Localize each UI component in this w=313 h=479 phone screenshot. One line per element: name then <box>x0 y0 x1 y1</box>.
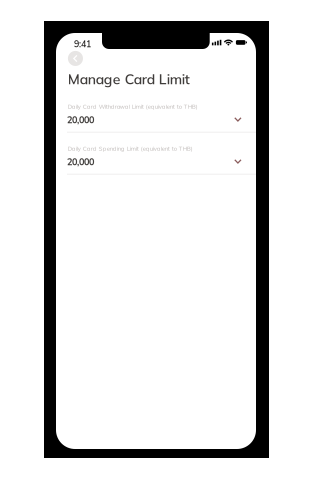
staticText: Daily Card Spending Limit (equivalent to… <box>68 145 193 152</box>
button[interactable]: Daily Card Withdrawal Limit (equivalent … <box>56 99 256 141</box>
staticText: 20,000 <box>67 114 94 126</box>
button[interactable]: Daily Card Spending Limit (equivalent to… <box>56 141 256 183</box>
staticText: 20,000 <box>67 156 94 168</box>
button[interactable]: Back <box>68 51 83 66</box>
staticText: 9:41 <box>74 38 91 49</box>
staticText: Manage Card Limit <box>68 70 190 88</box>
staticText: Daily Card Withdrawal Limit (equivalent … <box>68 103 198 110</box>
